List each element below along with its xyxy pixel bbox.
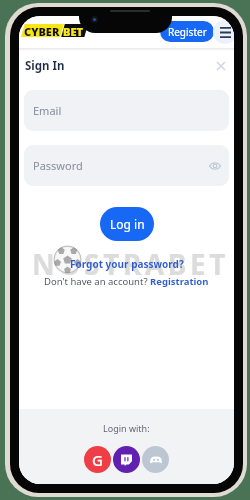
button[interactable]: Sign in with Twitch xyxy=(113,446,140,473)
button[interactable]: Sign in with Discord xyxy=(142,446,169,473)
staticText: Log in xyxy=(110,216,145,232)
button[interactable]: Sign in with Google xyxy=(84,446,111,473)
staticText: Don't have an account? xyxy=(44,275,150,288)
button[interactable]: Email xyxy=(24,90,229,131)
staticText: Login with: xyxy=(103,422,150,434)
button[interactable]: Password xyxy=(24,145,229,186)
staticText: NOSTRABET xyxy=(32,245,230,283)
staticText: G xyxy=(92,450,103,470)
button[interactable]: Log in xyxy=(100,207,154,241)
button[interactable]: Close xyxy=(213,58,229,74)
staticText: Register xyxy=(168,25,207,39)
staticText: CYBER xyxy=(24,24,60,37)
button[interactable]: Menu xyxy=(213,20,234,44)
staticText: Sign In xyxy=(25,58,65,74)
staticText: BET xyxy=(63,24,83,37)
staticText: Email xyxy=(33,103,62,118)
button[interactable]: Registration xyxy=(150,275,209,288)
button[interactable]: Register xyxy=(160,21,214,42)
button[interactable]: Show password xyxy=(207,158,223,174)
staticText: Password xyxy=(33,158,83,173)
button[interactable]: Forgot your password? xyxy=(70,257,184,271)
